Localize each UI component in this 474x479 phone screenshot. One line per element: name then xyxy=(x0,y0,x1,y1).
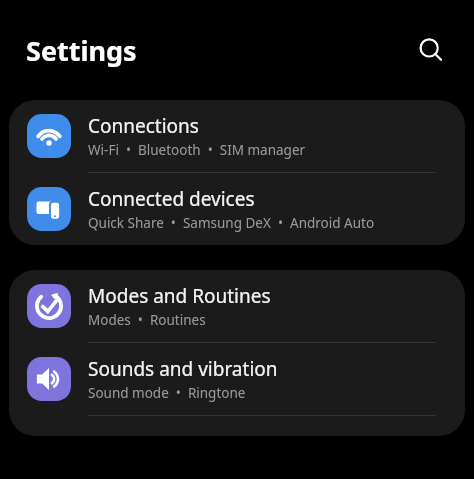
staticText: Quick Share • Samsung DeX • Android Auto xyxy=(88,214,375,232)
staticText: Sound mode • Ringtone xyxy=(88,384,246,402)
staticText: Modes • Routines xyxy=(88,311,206,329)
button[interactable]: Sounds and vibration xyxy=(9,343,465,415)
staticText: Modes and Routines xyxy=(88,283,271,309)
button[interactable]: Connections xyxy=(9,100,465,172)
staticText: Connections xyxy=(88,113,199,139)
button[interactable]: Modes and Routines xyxy=(9,270,465,342)
button[interactable]: Search xyxy=(408,27,454,73)
staticText: Sounds and vibration xyxy=(88,356,278,382)
staticText: Wi-Fi • Bluetooth • SIM manager xyxy=(88,141,306,159)
staticText: Settings xyxy=(26,32,137,69)
button[interactable]: Connected devices xyxy=(9,173,465,245)
staticText: Connected devices xyxy=(88,186,255,212)
